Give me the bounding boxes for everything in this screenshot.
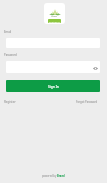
staticText: Email xyxy=(4,30,12,34)
staticText: Sign In xyxy=(48,84,59,88)
button[interactable]: Forgot Password xyxy=(76,100,98,104)
button[interactable]: Sign In xyxy=(6,80,100,92)
staticText: Forgot Password xyxy=(76,100,98,104)
button[interactable]: Register xyxy=(4,100,16,104)
staticText: FARMING xyxy=(49,20,60,23)
staticText: powered by xyxy=(42,174,57,178)
staticText: Password xyxy=(4,53,17,57)
staticText: AGRO xyxy=(51,15,58,18)
staticText: Brand xyxy=(57,174,65,178)
button[interactable]: Show password xyxy=(6,61,100,73)
staticText: Register xyxy=(4,100,16,104)
button[interactable]: Show password xyxy=(91,64,99,72)
